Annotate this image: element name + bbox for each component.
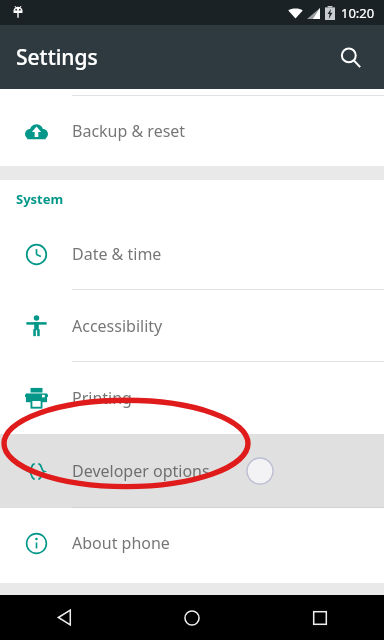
staticText: Accessibility — [72, 315, 163, 337]
staticText: Printing — [72, 387, 132, 409]
button[interactable]: Date & time — [0, 218, 384, 290]
button[interactable]: Printing — [0, 362, 384, 434]
staticText: Backup & reset — [72, 120, 186, 142]
staticText: Date & time — [72, 243, 162, 265]
button[interactable]: About phone — [0, 508, 384, 578]
staticText: About phone — [72, 532, 170, 554]
button[interactable]: Search — [326, 33, 374, 81]
staticText: Settings — [16, 43, 98, 72]
button[interactable]: Accessibility — [0, 290, 384, 362]
staticText: Developer options — [72, 460, 210, 482]
button[interactable]: Home — [128, 595, 256, 640]
staticText: 10:20 — [341, 4, 375, 22]
button[interactable]: Recent apps — [256, 595, 384, 640]
button[interactable]: Back — [0, 595, 128, 640]
button[interactable]: Developer options — [0, 434, 384, 508]
staticText: System — [16, 190, 64, 208]
button[interactable]: Backup & reset — [0, 96, 384, 166]
